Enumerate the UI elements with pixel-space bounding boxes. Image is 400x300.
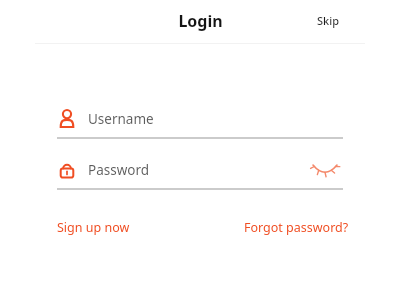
staticText: Username	[88, 110, 154, 128]
other: Password	[57, 160, 77, 180]
button[interactable]: Skip	[311, 7, 345, 34]
staticText: Skip	[317, 13, 339, 28]
staticText: Forgot password?	[244, 219, 349, 236]
button[interactable]: Forgot password?	[238, 214, 355, 241]
button[interactable]: Username	[57, 100, 343, 137]
staticText: Login	[178, 10, 223, 32]
other: Username	[57, 109, 77, 129]
staticText: Sign up now	[57, 219, 130, 236]
button[interactable]: Show password	[306, 155, 344, 183]
staticText: Password	[88, 161, 150, 179]
button[interactable]: Password	[57, 151, 343, 188]
button[interactable]: Sign up now	[51, 214, 136, 241]
